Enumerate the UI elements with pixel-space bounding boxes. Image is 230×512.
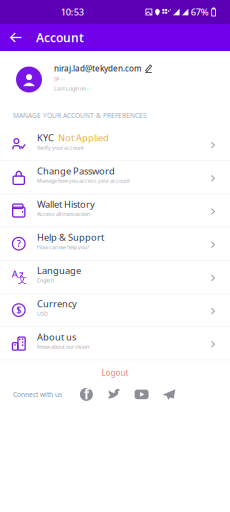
staticText: 10:53 <box>61 6 84 18</box>
staticText: Verify your account <box>37 144 84 151</box>
staticText: Manage how you access your account <box>37 177 130 184</box>
staticText: 67% <box>191 6 209 18</box>
staticText: How can we help you? <box>37 244 89 251</box>
staticText: niraj.lad@tekyden.com <box>54 63 142 74</box>
staticText: Connect with us <box>13 390 62 399</box>
staticText: Access all transaction <box>37 210 90 218</box>
staticText: KYC <box>37 131 54 144</box>
button[interactable]: Change Password <box>0 161 230 194</box>
button[interactable]: Wallet History <box>0 194 230 227</box>
staticText: About us <box>37 331 76 343</box>
staticText: Wallet History <box>37 198 95 210</box>
button[interactable]: KYC <box>0 128 230 161</box>
button[interactable]: About us <box>0 327 230 360</box>
staticText: ? <box>17 237 21 250</box>
staticText: Know about our vision <box>37 343 89 350</box>
button[interactable]: A <box>0 261 230 294</box>
staticText: 文 <box>18 274 27 286</box>
button[interactable]: Twitter <box>100 387 128 401</box>
staticText: Change Password <box>37 165 115 177</box>
button[interactable]: Back <box>0 24 30 51</box>
staticText: A <box>12 268 18 280</box>
staticText: S <box>16 304 21 316</box>
staticText: Last Login on · · · <box>54 85 92 92</box>
staticText: Language <box>37 264 81 277</box>
staticText: f <box>84 385 89 403</box>
staticText: Not Applied <box>58 131 109 144</box>
staticText: MANAGE YOUR ACCOUNT & PREFERENCES <box>13 111 147 120</box>
staticText: IP · · · <box>54 76 65 83</box>
button[interactable]: ? <box>0 227 230 261</box>
staticText: USD <box>37 310 48 317</box>
staticText: Help & Support <box>37 231 104 243</box>
button[interactable]: Facebook <box>73 387 100 401</box>
staticText: English <box>37 277 54 284</box>
button[interactable]: S <box>0 294 230 327</box>
staticText: Account <box>36 29 84 45</box>
staticText: Currency <box>37 297 77 310</box>
staticText: Logout <box>101 367 128 378</box>
button[interactable]: YouTube <box>128 387 155 401</box>
button[interactable]: Telegram <box>155 387 183 401</box>
button[interactable]: Logout <box>0 360 230 384</box>
